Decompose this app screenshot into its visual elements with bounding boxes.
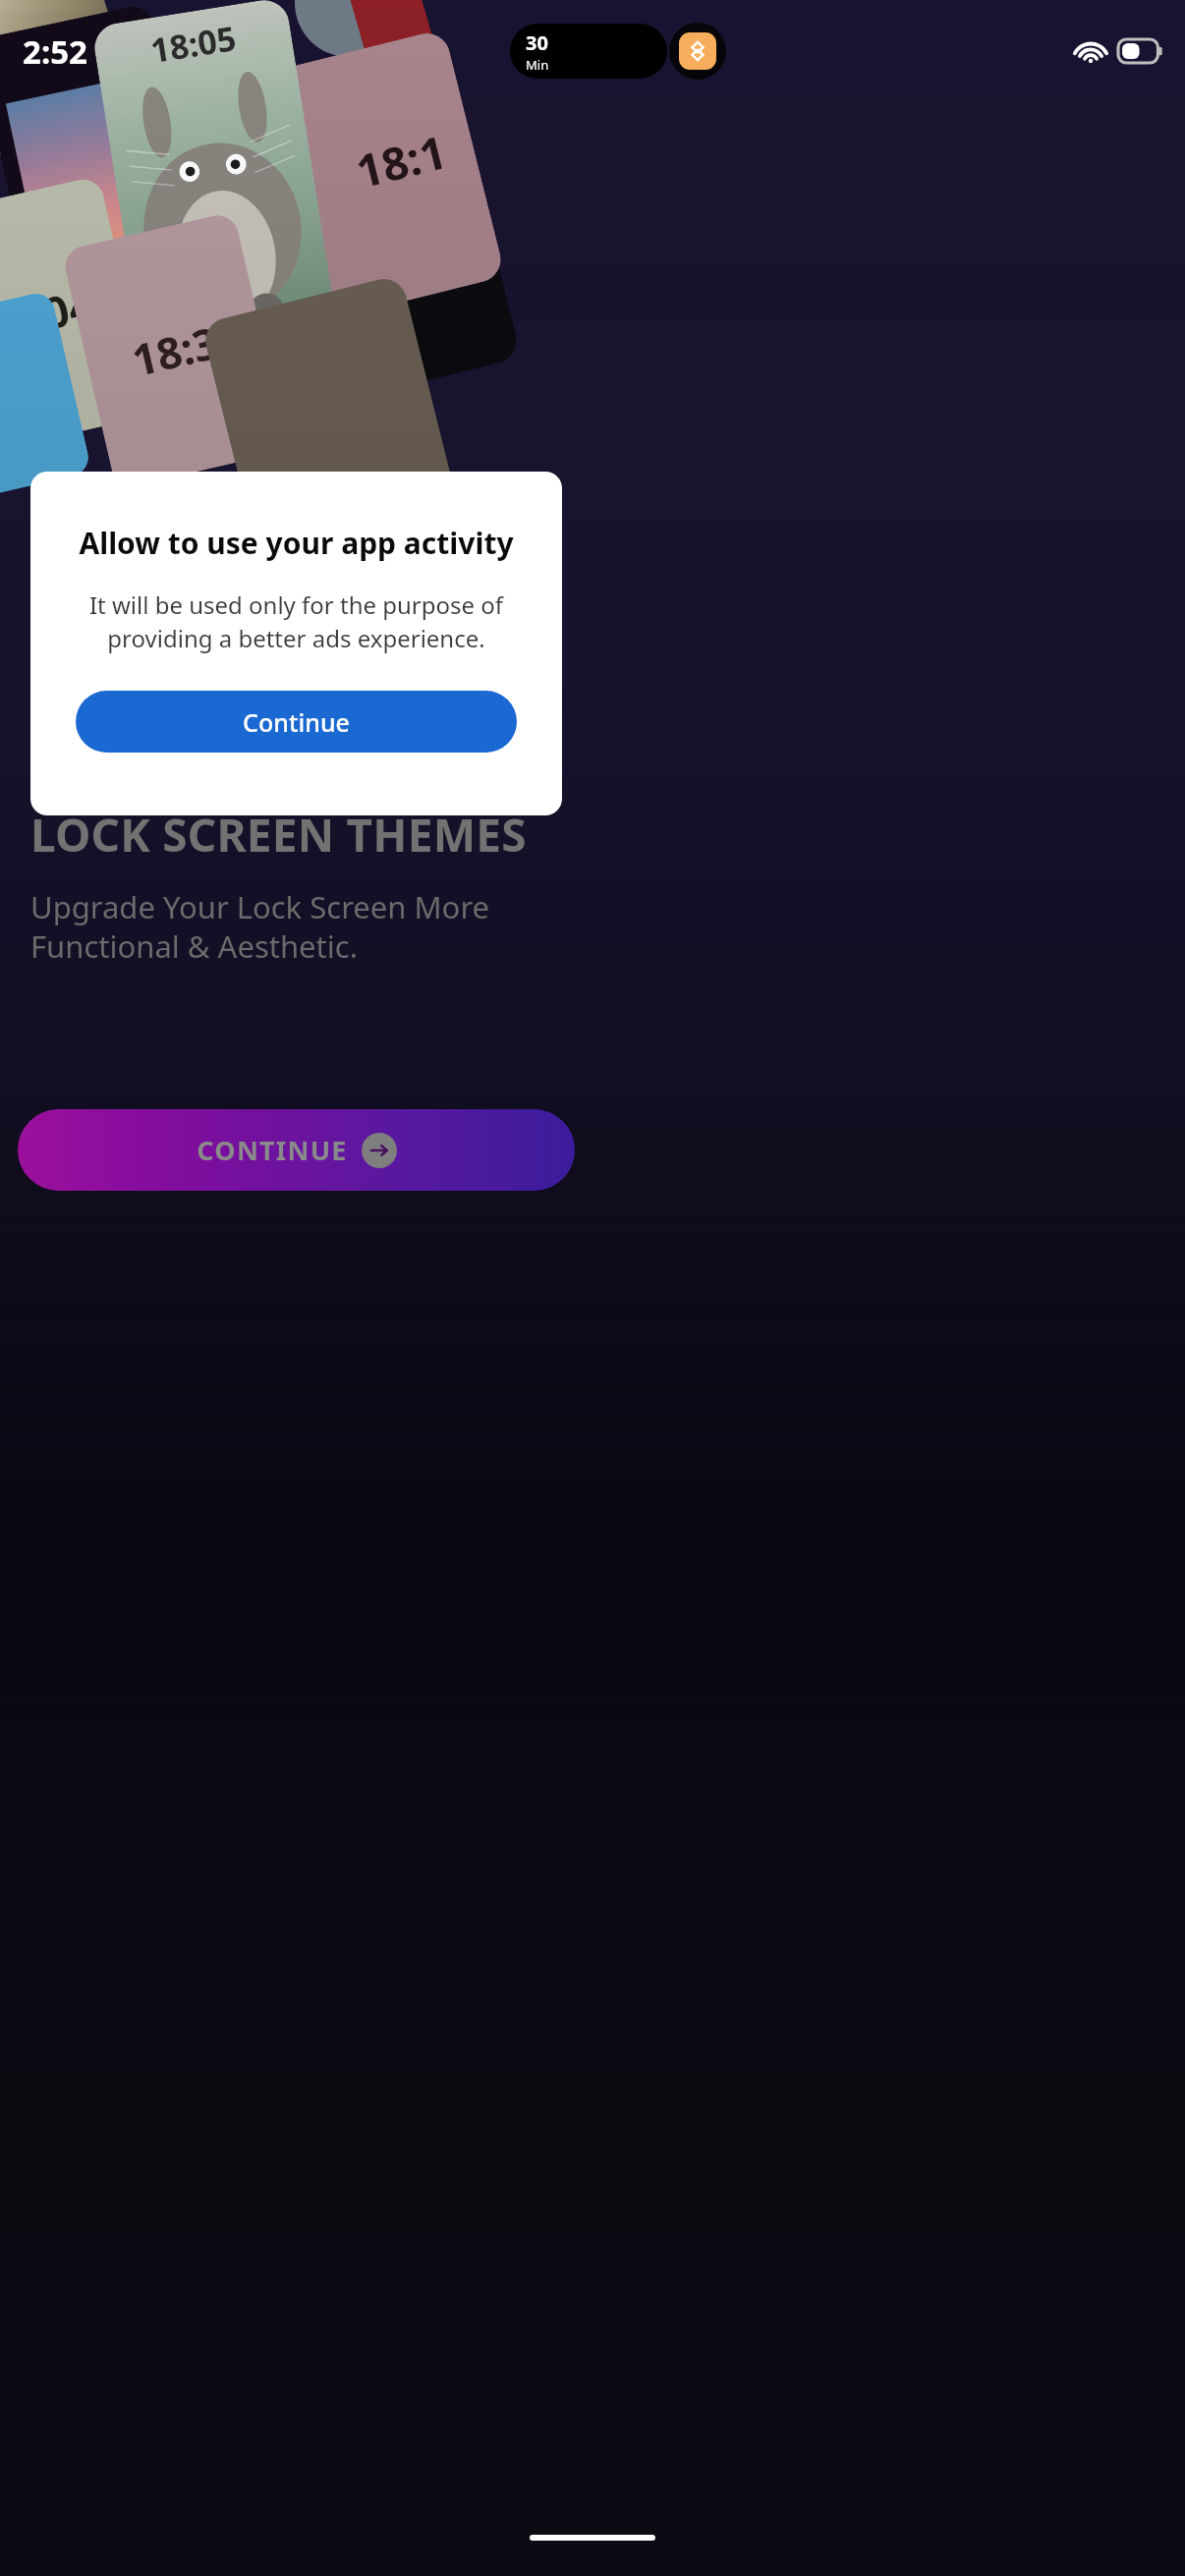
staticText: LOCK SCREEN THEMES (30, 804, 527, 866)
other: App activity (669, 23, 726, 80)
other: Wi-Fi (1074, 38, 1107, 64)
staticText: Continue (243, 705, 350, 739)
other: Battery (1118, 39, 1163, 63)
button[interactable]: CONTINUE (18, 1109, 575, 1191)
staticText: 30 (526, 29, 548, 56)
staticText: 18:05 (147, 15, 239, 73)
staticText: 18:3 (126, 312, 224, 389)
staticText: Allow to use your app activity (30, 523, 562, 563)
button[interactable]: Continue (76, 691, 517, 753)
staticText: 2:52 (23, 29, 87, 74)
staticText: 18:04 (0, 274, 100, 357)
staticText: CONTINUE (197, 1132, 348, 1168)
staticText: It will be used only for the purpose of … (30, 588, 562, 655)
staticText: Upgrade Your Lock Screen More Functional… (30, 886, 490, 967)
staticText: 18:1 (350, 120, 452, 202)
staticText: Min (526, 56, 549, 74)
